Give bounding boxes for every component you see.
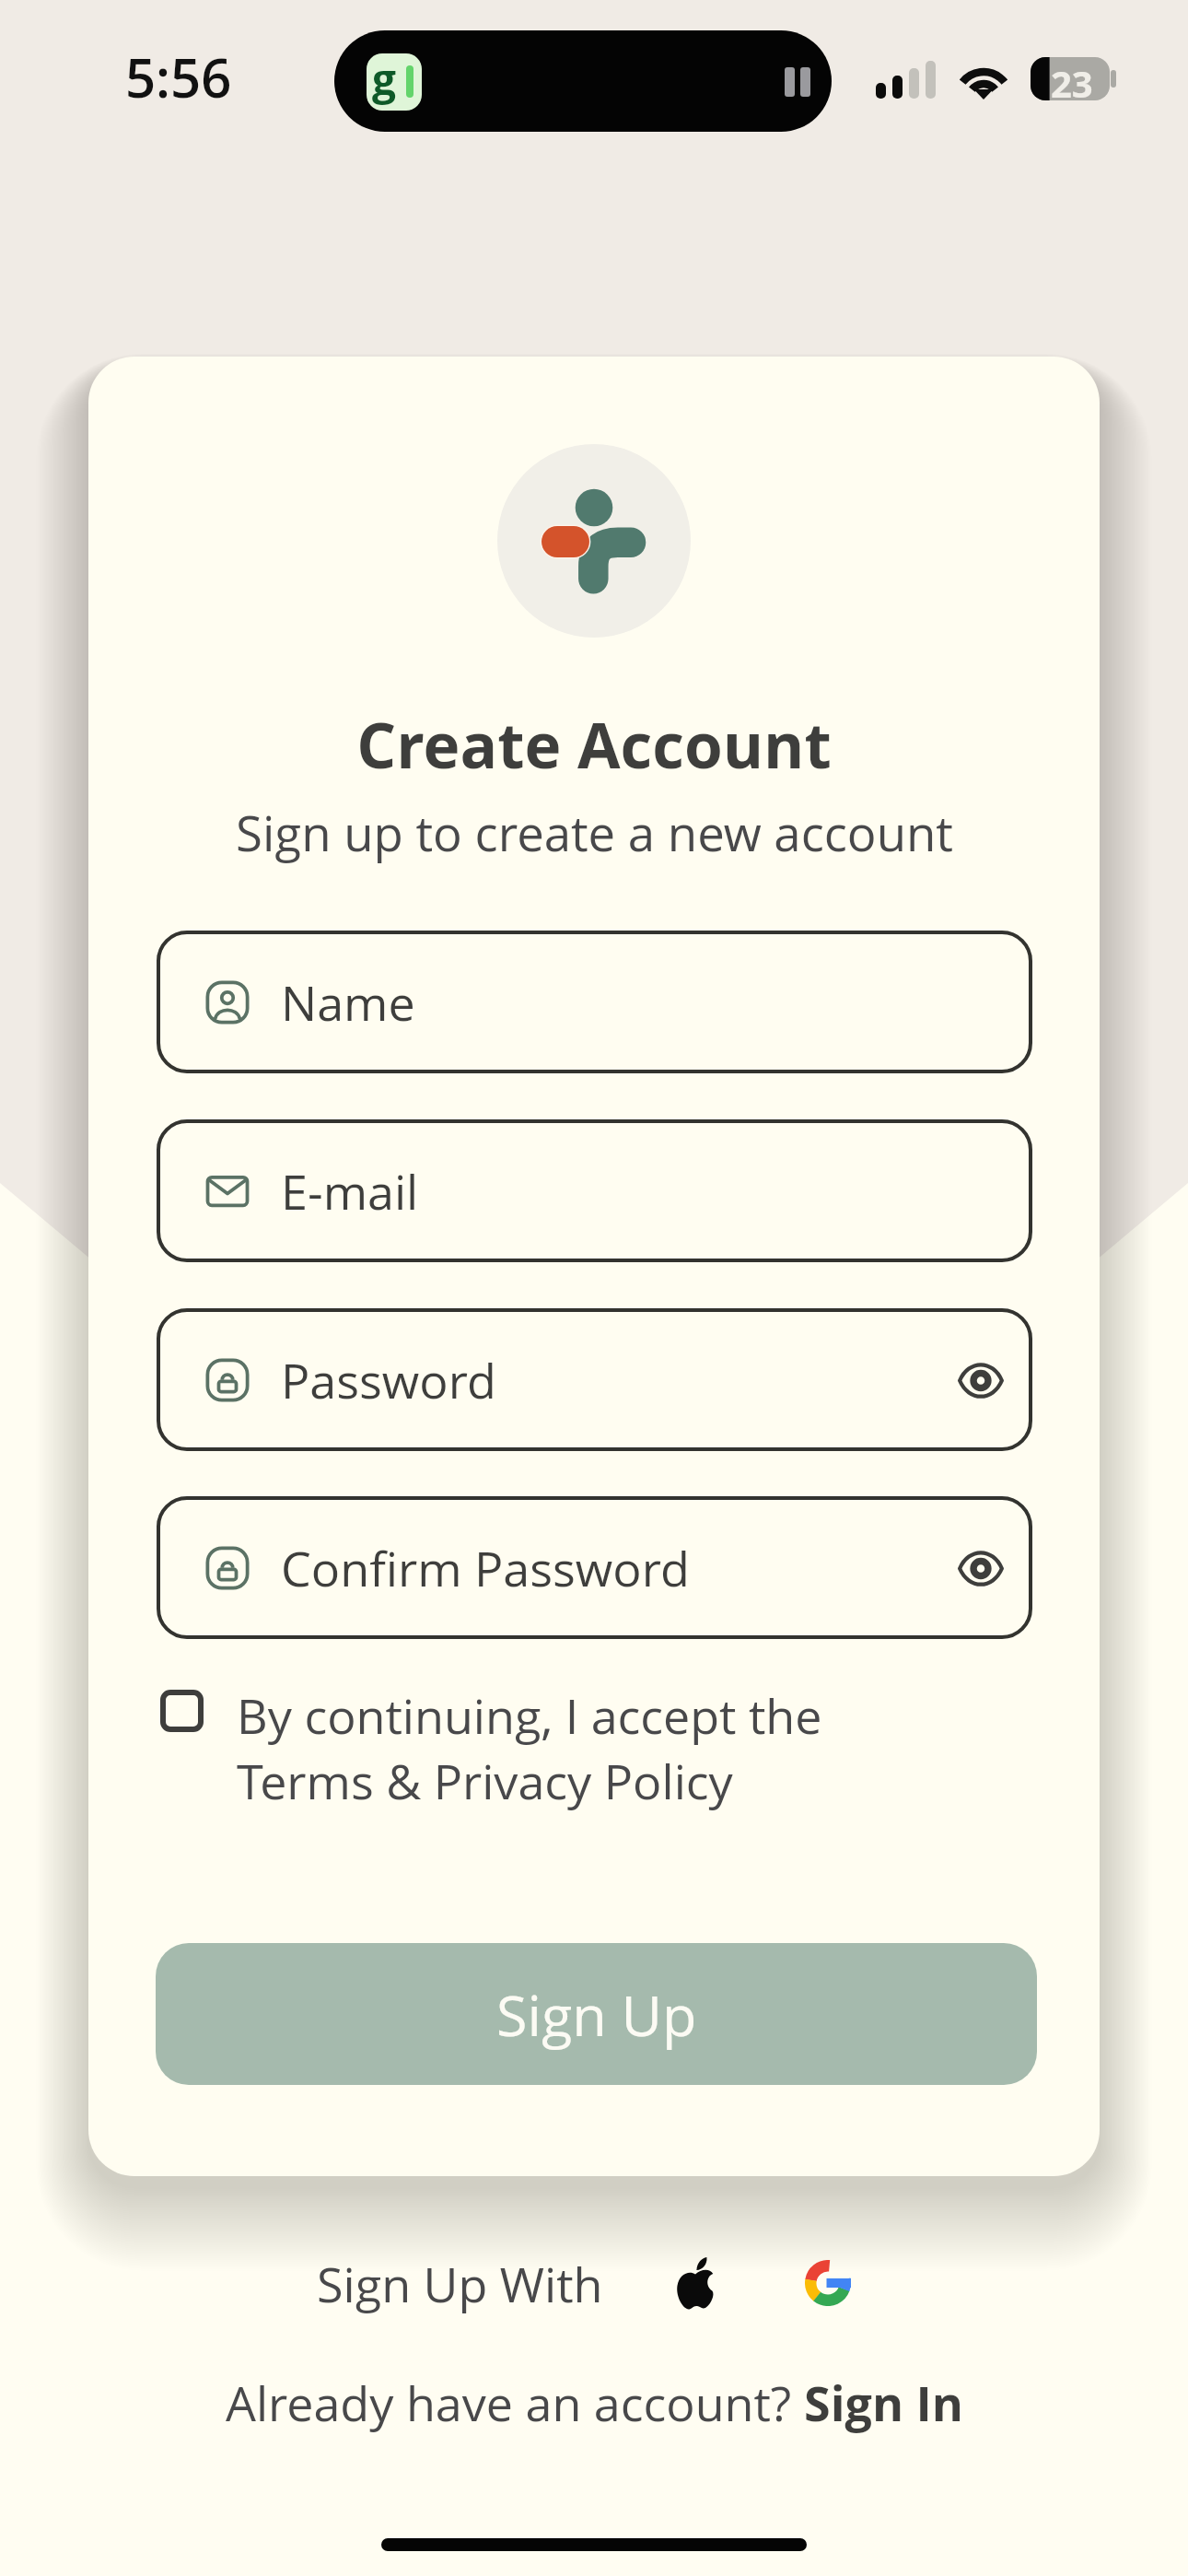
staticText: E-mail <box>281 1158 419 1224</box>
staticText: Confirm Password <box>281 1535 690 1600</box>
button[interactable]: Sign In <box>804 2370 963 2435</box>
staticText: 5:56 <box>125 41 232 113</box>
staticText: 23 <box>1051 58 1093 101</box>
button[interactable]: Sign up with Google <box>784 2239 872 2327</box>
button[interactable]: E-mail <box>157 1119 1032 1262</box>
button[interactable]: Password <box>157 1308 1032 1451</box>
staticText: By continuing, I accept the <box>237 1682 822 1748</box>
staticText: Password <box>281 1347 496 1412</box>
staticText: Name <box>281 969 415 1035</box>
staticText: Already have an account? <box>226 2370 804 2435</box>
button[interactable]: Show password <box>958 1362 1004 1399</box>
button[interactable]: Name <box>157 931 1032 1073</box>
staticText: Sign In <box>804 2370 963 2435</box>
button[interactable]: By continuing, I accept the <box>160 1682 980 1813</box>
staticText: Sign up to create a new account <box>236 800 953 866</box>
button[interactable]: Show password <box>958 1550 1004 1587</box>
button[interactable]: Confirm Password <box>157 1496 1032 1639</box>
staticText: Sign Up With <box>317 2251 603 2316</box>
button[interactable]: Sign Up <box>156 1943 1037 2085</box>
button[interactable]: Sign up with Apple <box>651 2239 740 2327</box>
staticText: Sign Up <box>496 1976 697 2053</box>
staticText: Create Account <box>356 702 832 787</box>
staticText: Terms & Privacy Policy <box>237 1748 733 1813</box>
staticText: g <box>372 53 396 107</box>
